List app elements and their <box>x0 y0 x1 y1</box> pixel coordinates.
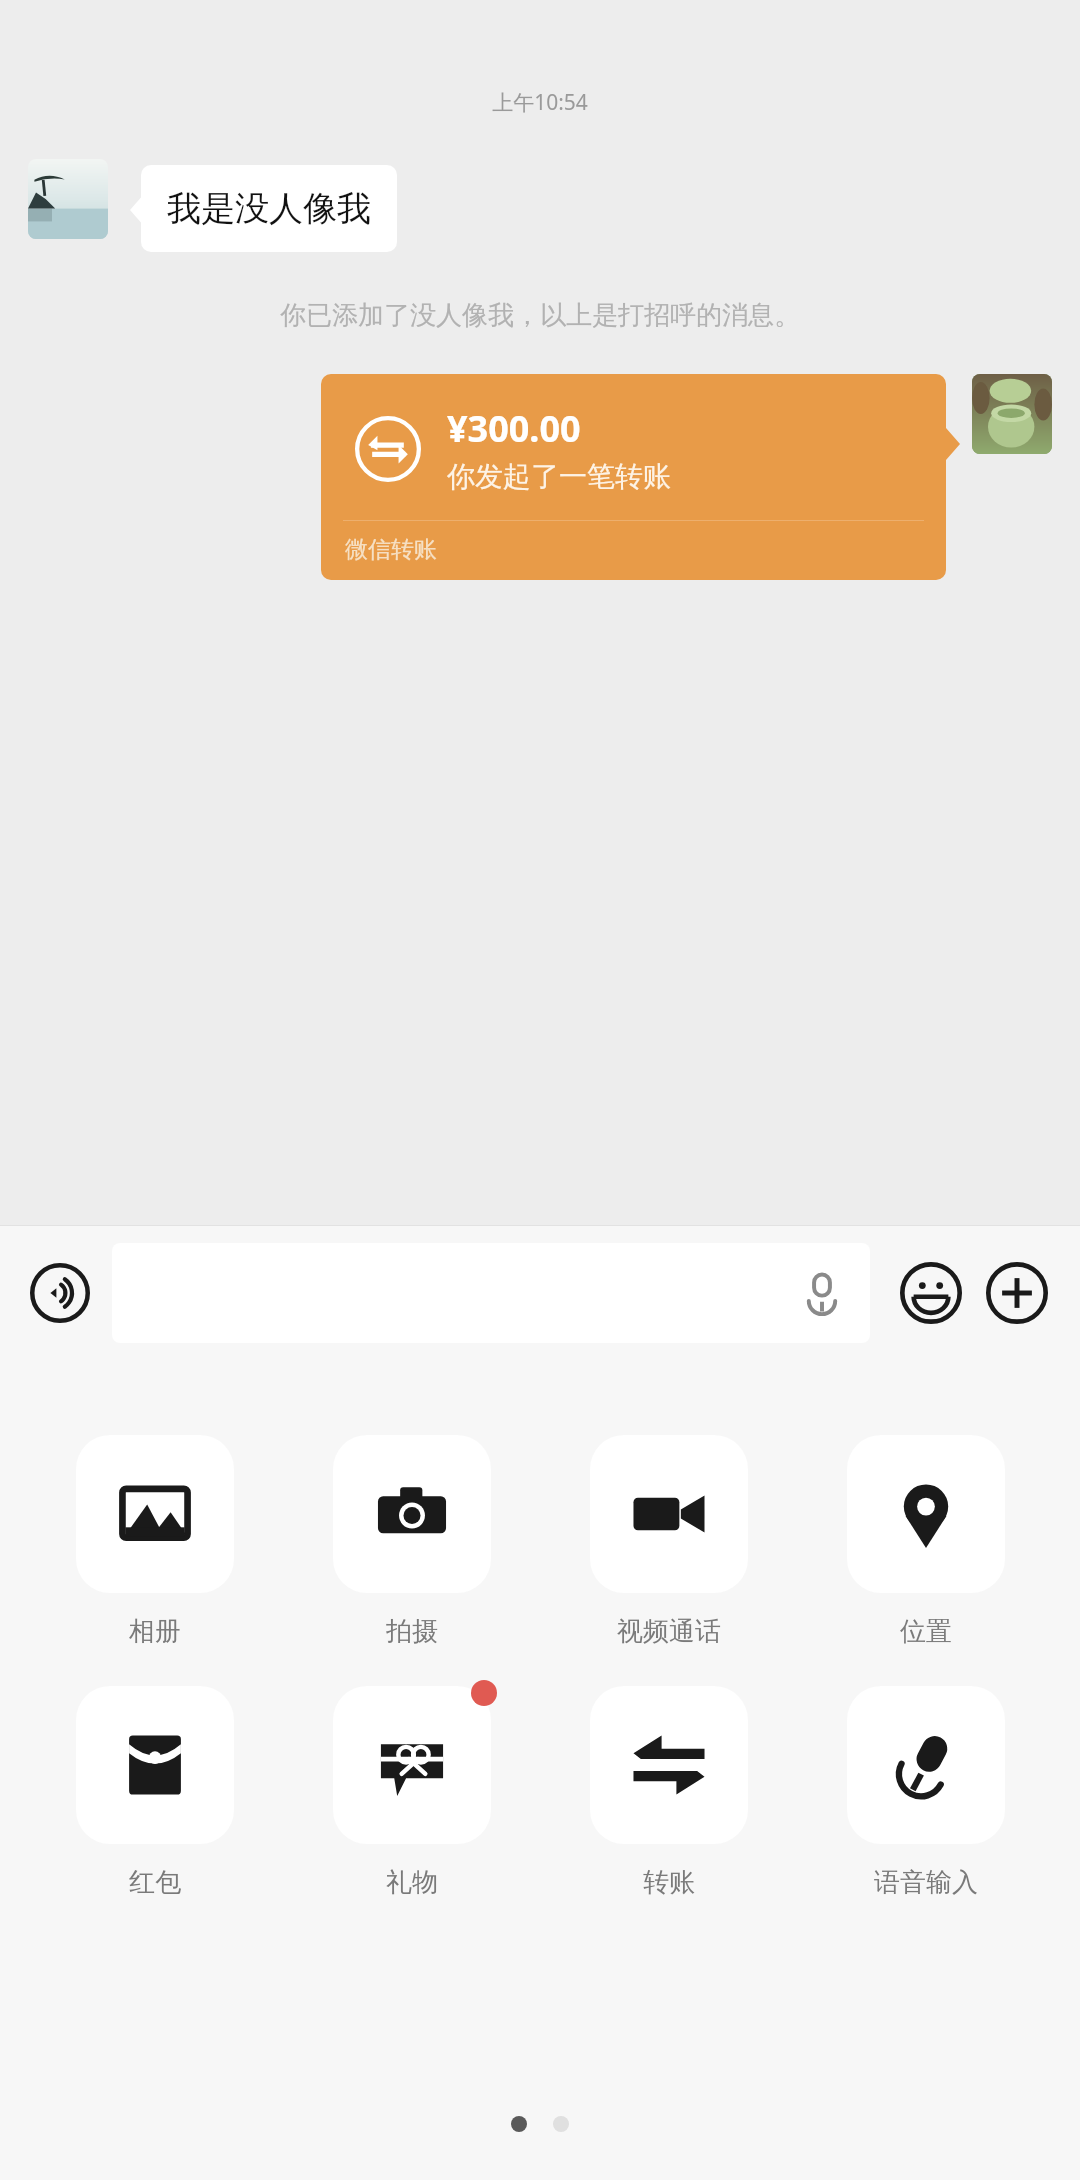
staticText: 视频通话 <box>617 1615 721 1648</box>
staticText: 你发起了一笔转账 <box>447 459 671 494</box>
button[interactable]: 视频通话 <box>540 1435 797 1648</box>
button[interactable]: More <box>978 1254 1056 1332</box>
staticText: 红包 <box>129 1866 181 1899</box>
button[interactable]: 红包 <box>26 1686 283 1899</box>
button[interactable]: 拍摄 <box>283 1435 540 1648</box>
button[interactable]: 礼物 <box>283 1686 540 1899</box>
staticText: 拍摄 <box>386 1615 438 1648</box>
button[interactable]: 位置 <box>797 1435 1054 1648</box>
button[interactable]: 转账 <box>540 1686 797 1899</box>
button[interactable]: Emoji <box>892 1254 970 1332</box>
staticText: 位置 <box>900 1615 952 1648</box>
staticText: 语音输入 <box>874 1866 978 1899</box>
button[interactable] <box>112 1243 870 1343</box>
staticText: 转账 <box>643 1866 695 1899</box>
button[interactable]: 语音输入 <box>797 1686 1054 1899</box>
button[interactable]: 我是没人像我 <box>130 165 397 255</box>
staticText: 微信转账 <box>345 535 437 564</box>
staticText: 你已添加了没人像我，以上是打招呼的消息。 <box>0 299 1080 332</box>
staticText: 相册 <box>129 1615 181 1648</box>
staticText: 上午10:54 <box>0 88 1080 117</box>
staticText: 礼物 <box>386 1866 438 1899</box>
button[interactable]: ¥300.00 <box>321 374 960 580</box>
button[interactable]: 相册 <box>26 1435 283 1648</box>
staticText: ¥300.00 <box>447 404 581 453</box>
button[interactable]: Voice input <box>24 1257 96 1329</box>
staticText: 我是没人像我 <box>167 187 371 230</box>
button[interactable] <box>28 159 108 239</box>
button[interactable] <box>972 374 1052 454</box>
